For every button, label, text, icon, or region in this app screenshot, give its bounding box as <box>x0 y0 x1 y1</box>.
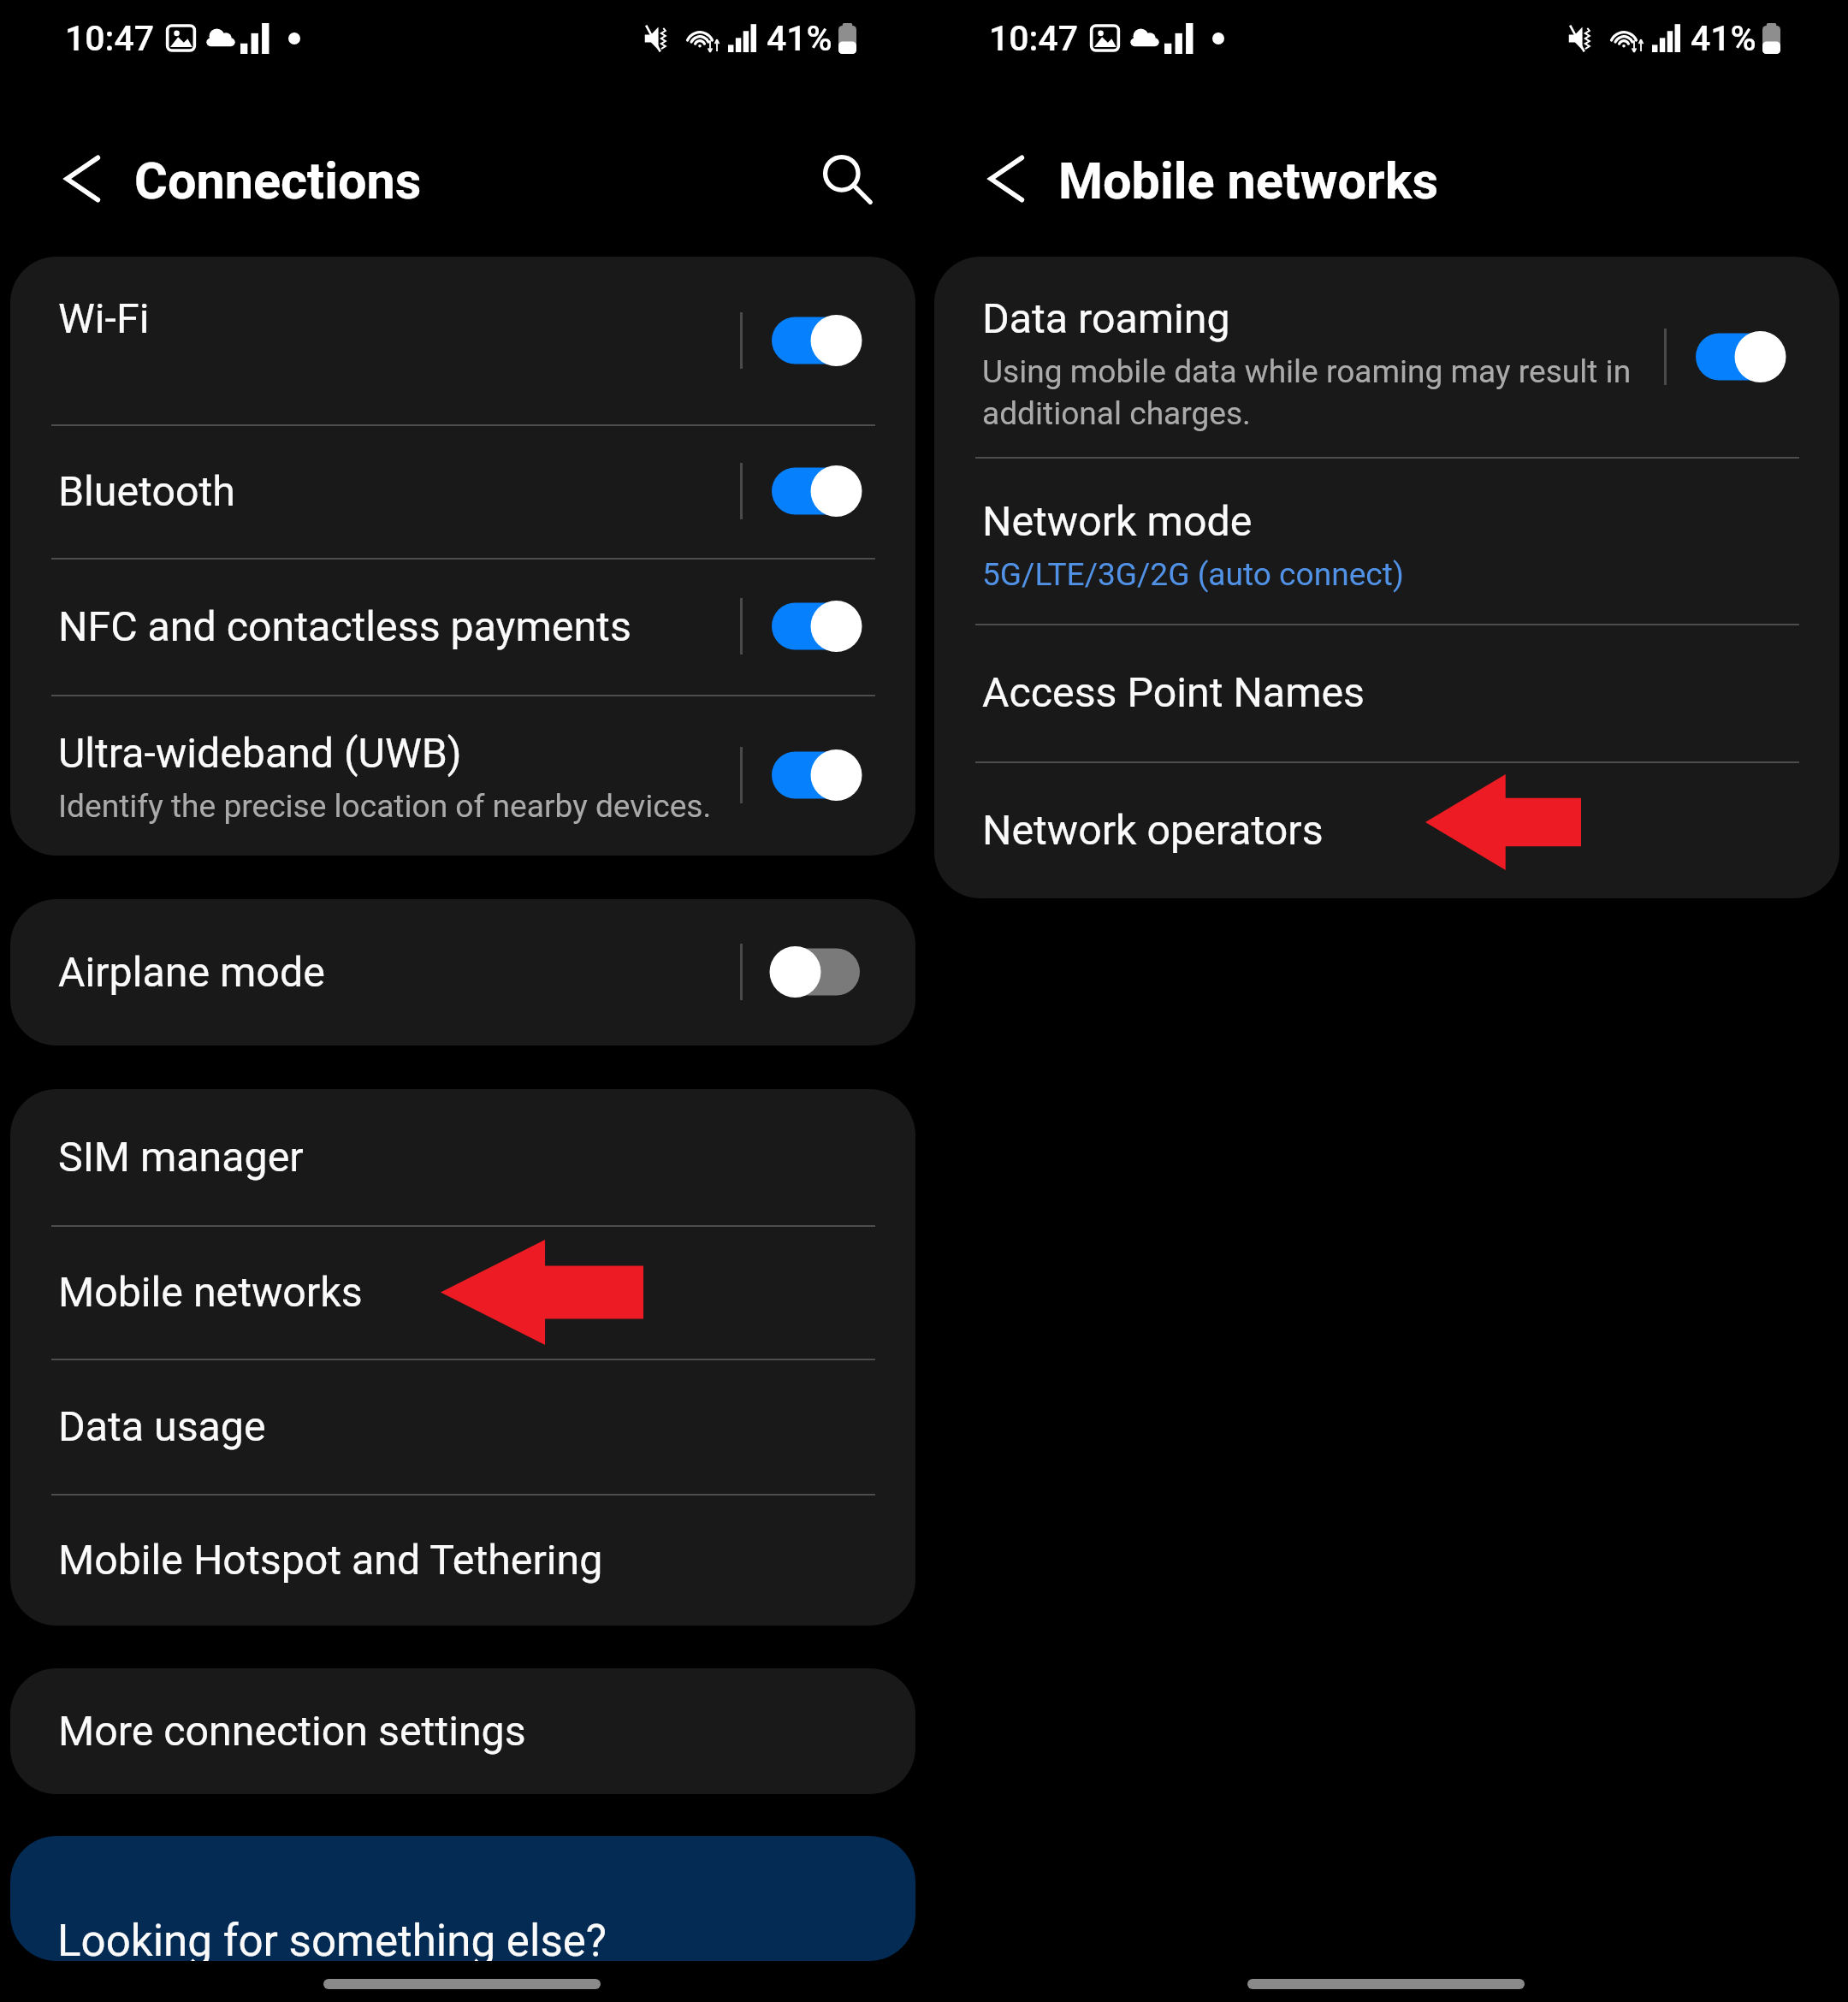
button[interactable]: Wi-Fi <box>10 257 915 424</box>
staticText: More connection settings <box>58 1705 526 1756</box>
button[interactable]: Airplane mode <box>10 899 915 1045</box>
staticText: 41% <box>767 16 832 60</box>
button[interactable]: Looking for something else? <box>10 1836 915 1961</box>
staticText: Data usage <box>58 1401 266 1452</box>
button[interactable]: Access Point Names <box>934 624 1839 761</box>
button[interactable]: Navigate up <box>30 127 133 230</box>
staticText: Airplane mode <box>58 946 325 998</box>
staticText: Mobile networks <box>1058 149 1439 212</box>
staticText: NFC and contactless payments <box>58 601 631 652</box>
button[interactable]: Network mode <box>934 457 1839 624</box>
staticText: Looking for something else? <box>57 1913 607 1961</box>
staticText: Connections <box>134 149 422 212</box>
button[interactable]: Search <box>796 127 898 230</box>
staticText: Mobile Hotspot and Tethering <box>58 1534 603 1585</box>
staticText: Network operators <box>982 804 1324 856</box>
staticText: SIM manager <box>58 1131 304 1182</box>
staticText: Mobile networks <box>58 1266 363 1318</box>
button[interactable]: Navigate up <box>954 127 1057 230</box>
button[interactable]: Data roaming <box>934 257 1839 457</box>
staticText: Ultra-wideband (UWB) <box>58 727 462 779</box>
staticText: 10:47 <box>65 16 155 60</box>
button[interactable]: Switch, on <box>1664 316 1784 398</box>
staticText: Data roaming <box>982 293 1230 344</box>
staticText: 10:47 <box>989 16 1079 60</box>
staticText: Bluetooth <box>58 465 235 517</box>
staticText: Identify the precise location of nearby … <box>58 784 712 826</box>
button[interactable]: Switch, on <box>740 450 860 532</box>
button[interactable]: Bluetooth <box>10 424 915 558</box>
button[interactable]: SIM manager <box>10 1089 915 1225</box>
button[interactable]: Switch, on <box>740 734 860 816</box>
staticText: Using mobile data while roaming may resu… <box>982 349 1632 433</box>
button[interactable]: More connection settings <box>10 1668 915 1794</box>
staticText: Wi-Fi <box>58 293 150 344</box>
staticText: 41% <box>1691 16 1756 60</box>
staticText: Network mode <box>982 495 1253 547</box>
staticText: 5G/LTE/3G/2G (auto connect) <box>982 552 1404 594</box>
button[interactable]: Mobile Hotspot and Tethering <box>10 1494 915 1626</box>
button[interactable]: Switch, on <box>740 299 860 382</box>
staticText: Access Point Names <box>982 666 1365 718</box>
button[interactable]: NFC and contactless payments <box>10 558 915 695</box>
button[interactable]: Switch, off <box>740 931 860 1013</box>
button[interactable]: Network operators <box>934 761 1839 898</box>
button[interactable]: Data usage <box>10 1359 915 1494</box>
button[interactable]: Ultra-wideband (UWB) <box>10 695 915 856</box>
button[interactable]: Switch, on <box>740 585 860 667</box>
button[interactable]: Mobile networks <box>10 1225 915 1359</box>
